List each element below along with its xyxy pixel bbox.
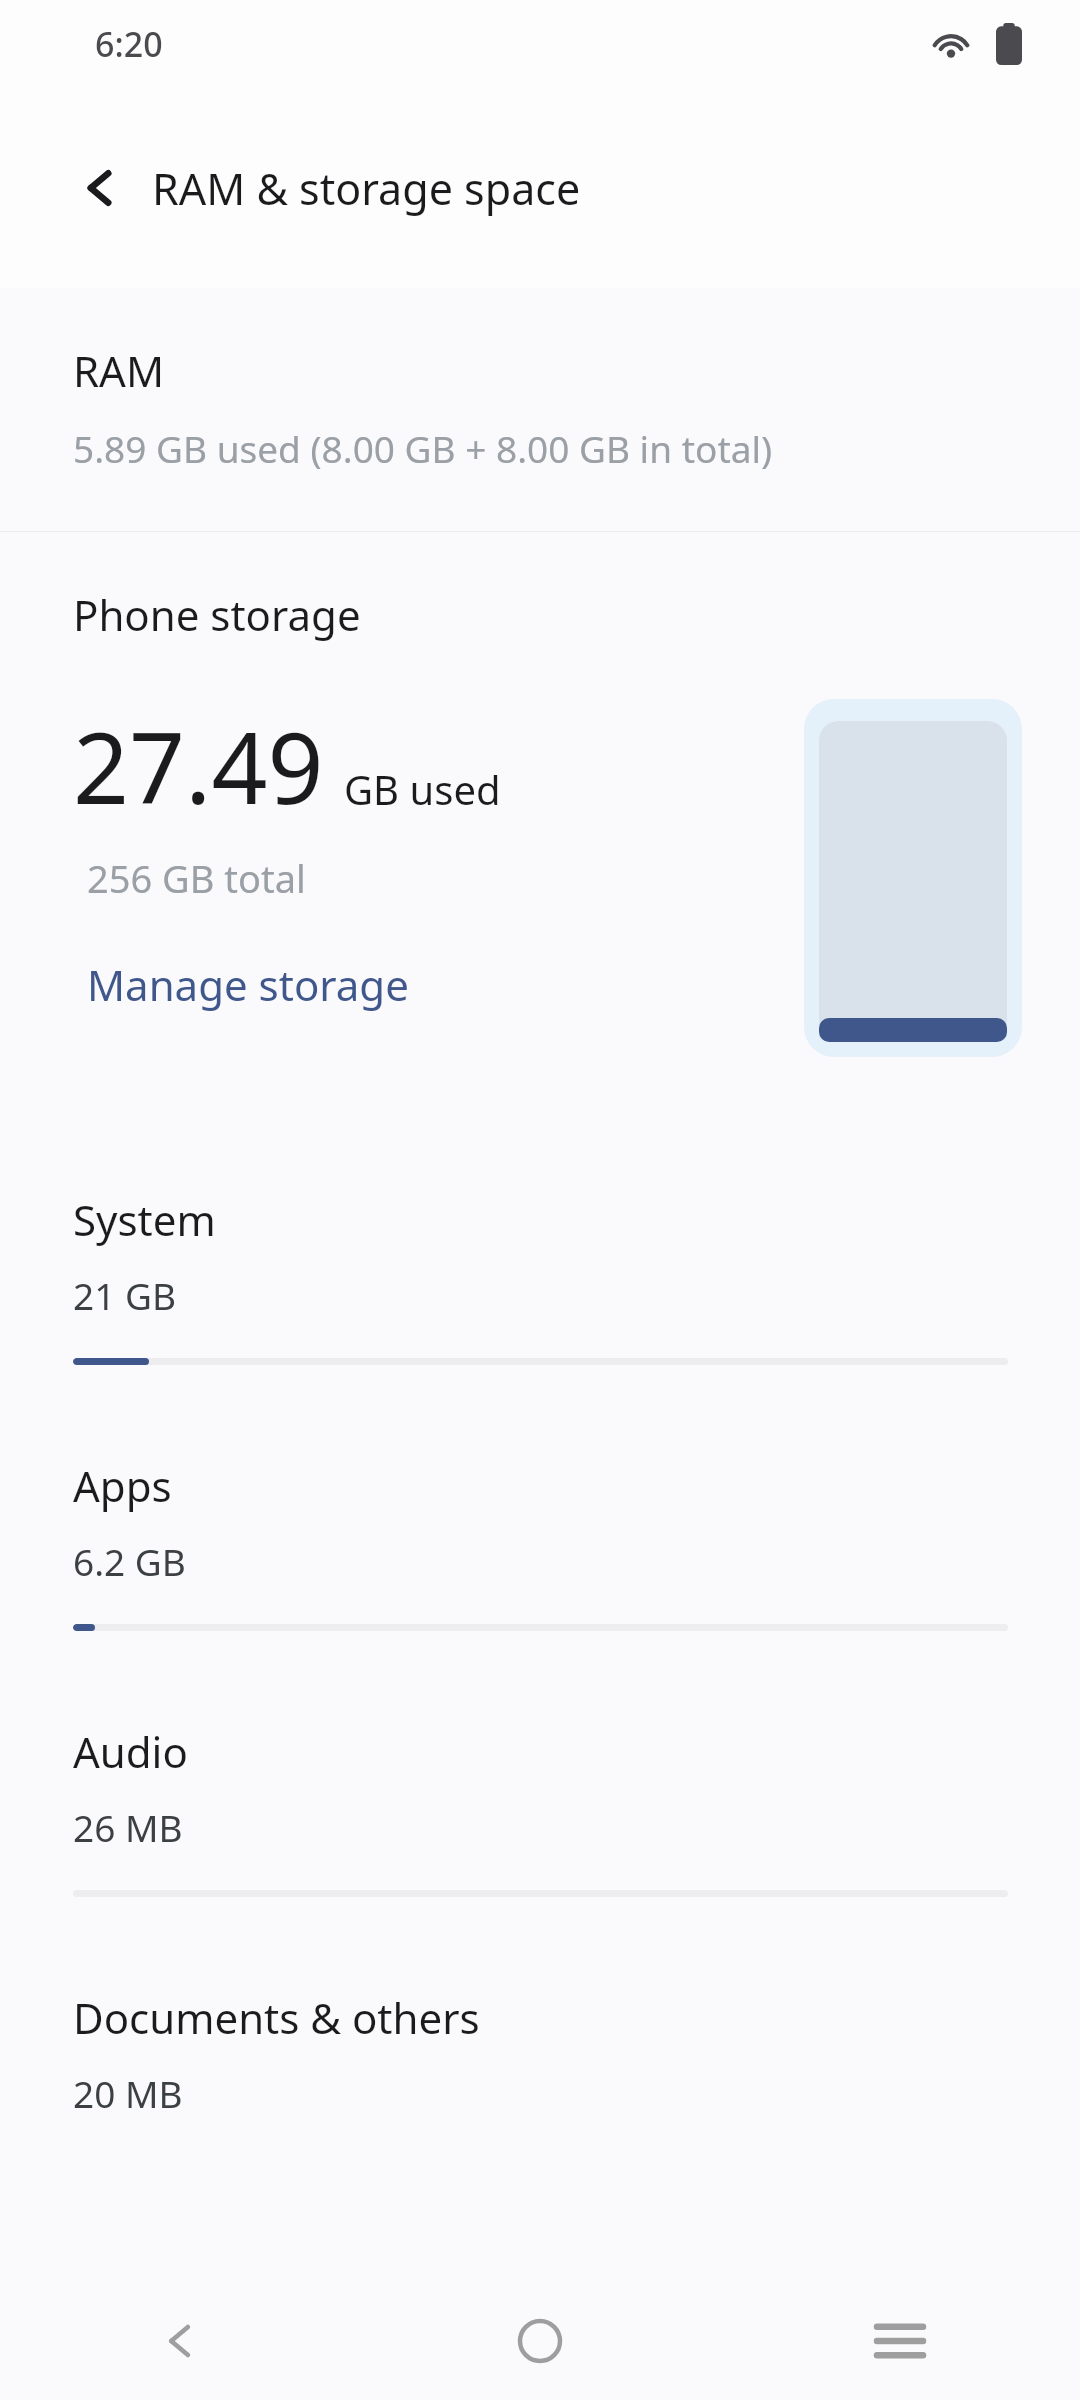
- staticText: 21 GB: [73, 1270, 176, 1320]
- button[interactable]: Apps: [0, 1457, 1080, 1723]
- button[interactable]: Home: [360, 2282, 720, 2400]
- staticText: Documents & others: [73, 1989, 480, 2046]
- staticText: Audio: [73, 1723, 188, 1780]
- staticText: System: [73, 1191, 216, 1248]
- staticText: Phone storage: [73, 586, 361, 643]
- staticText: Apps: [73, 1457, 172, 1514]
- button[interactable]: RAM: [0, 288, 1080, 531]
- button[interactable]: Recent apps: [720, 2282, 1080, 2400]
- staticText: 256 GB total: [87, 852, 306, 904]
- button[interactable]: Manage storage: [73, 952, 423, 1017]
- staticText: 26 MB: [73, 1802, 183, 1852]
- button[interactable]: Back: [0, 2282, 360, 2400]
- staticText: 6:20: [95, 21, 163, 67]
- staticText: RAM: [73, 342, 165, 399]
- button[interactable]: System: [0, 1191, 1080, 1457]
- button[interactable]: Documents & others: [0, 1989, 1080, 2118]
- staticText: Manage storage: [87, 956, 409, 1013]
- staticText: 6.2 GB: [73, 1536, 186, 1586]
- button[interactable]: Back: [50, 138, 150, 238]
- staticText: RAM & storage space: [152, 159, 581, 218]
- staticText: 5.89 GB used (8.00 GB + 8.00 GB in total…: [73, 423, 773, 473]
- staticText: 20 MB: [73, 2068, 183, 2118]
- button[interactable]: Audio: [0, 1723, 1080, 1989]
- staticText: 27.49: [73, 699, 324, 832]
- staticText: GB used: [344, 762, 501, 816]
